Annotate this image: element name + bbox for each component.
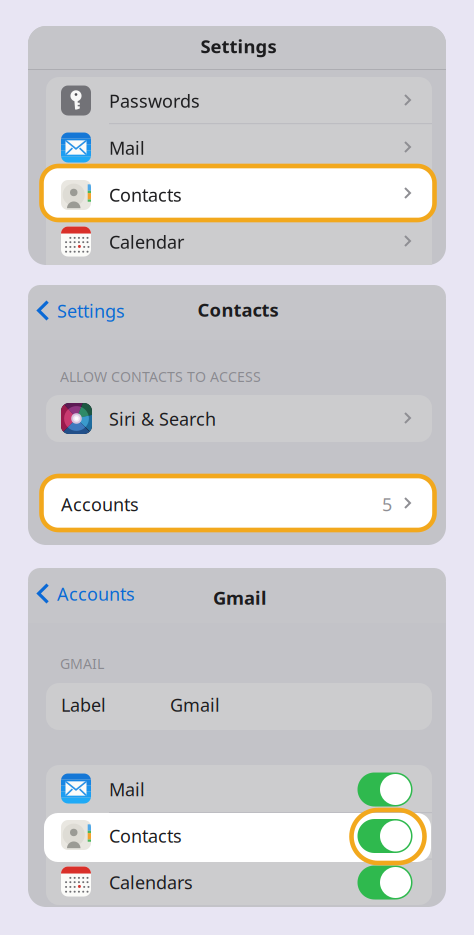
button[interactable]: Accounts <box>0 0 474 54</box>
staticText: Calendars <box>109 870 193 894</box>
button[interactable]: Siri & Search <box>0 0 474 47</box>
staticText: Contacts <box>197 297 278 322</box>
staticText: 5 <box>382 492 392 516</box>
staticText: Gmail <box>170 692 220 717</box>
staticText: Calendar <box>109 229 184 254</box>
staticText: Accounts <box>61 492 139 516</box>
staticText: Siri & Search <box>109 406 216 431</box>
button[interactable]: Passwords <box>0 0 474 47</box>
staticText: Contacts <box>109 182 182 207</box>
staticText: Contacts <box>109 823 182 848</box>
staticText: ALLOW CONTACTS TO ACCESS <box>60 367 261 386</box>
staticText: Gmail <box>213 585 266 610</box>
staticText: Passwords <box>109 88 200 113</box>
button[interactable]: Calendar <box>0 0 474 47</box>
staticText: Mail <box>109 777 145 801</box>
button[interactable]: Mail <box>0 0 474 47</box>
button[interactable]: Mail <box>0 0 474 47</box>
button[interactable]: Contacts <box>0 0 474 54</box>
staticText: Settings <box>57 298 125 323</box>
staticText: Label <box>61 692 106 717</box>
button[interactable]: Settings <box>0 0 474 30</box>
staticText: Accounts <box>57 581 135 606</box>
staticText: Mail <box>109 135 145 160</box>
staticText: Settings <box>200 33 276 59</box>
button[interactable]: Contacts <box>0 0 474 53</box>
button[interactable]: Accounts <box>0 0 474 30</box>
button[interactable]: Calendars <box>0 0 474 46</box>
staticText: GMAIL <box>60 654 104 673</box>
